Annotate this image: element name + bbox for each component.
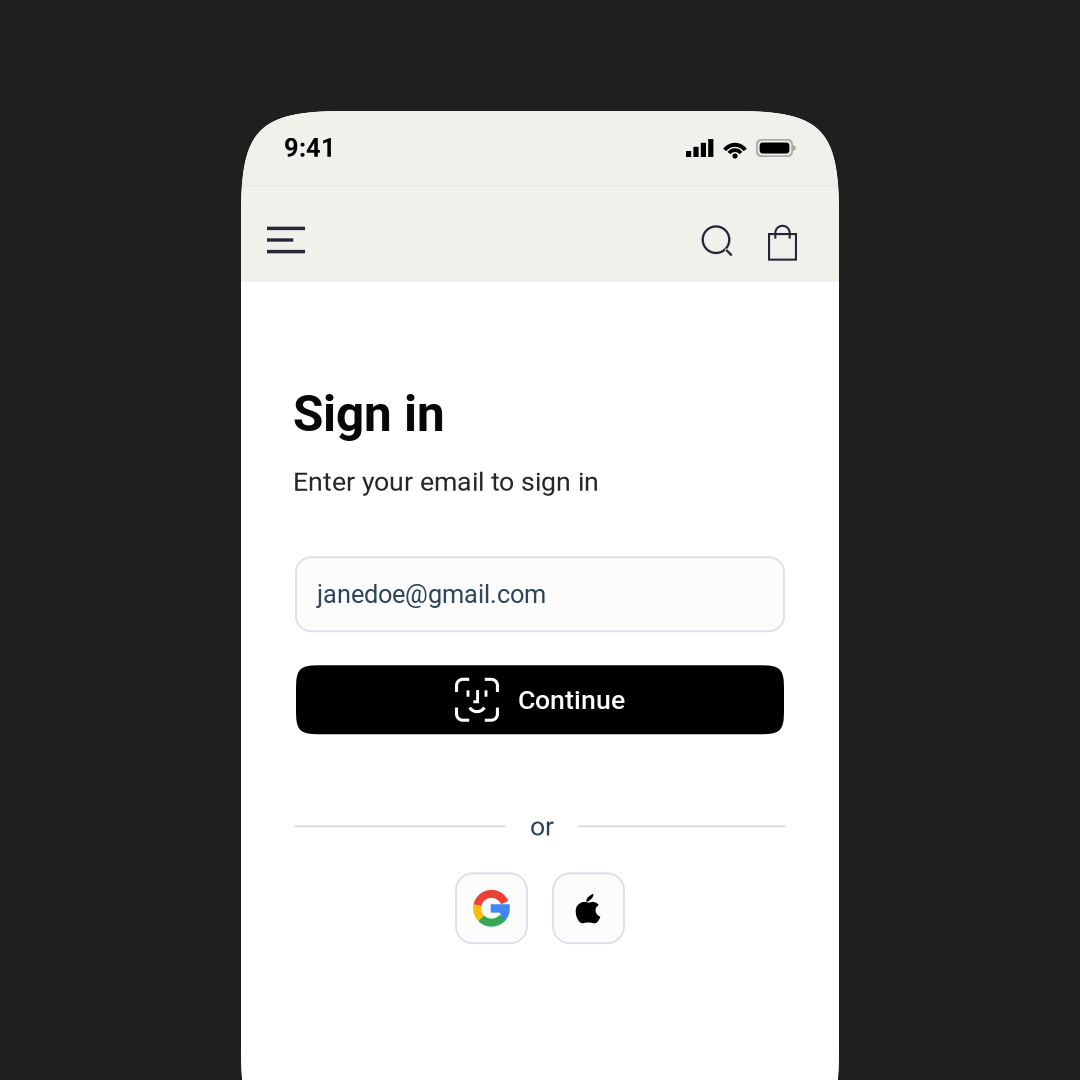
staticText: 9:41 xyxy=(284,133,336,163)
button[interactable]: Search xyxy=(705,204,758,274)
button[interactable]: Menu xyxy=(267,204,329,274)
staticText: Continue xyxy=(518,684,625,715)
button[interactable]: janedoe@gmail.com xyxy=(296,557,784,631)
button[interactable]: Sign in with Apple xyxy=(553,873,624,943)
button[interactable]: Continue xyxy=(296,665,784,734)
staticText: or xyxy=(530,811,554,842)
button[interactable]: Shopping bag xyxy=(758,204,807,274)
staticText: janedoe@gmail.com xyxy=(317,579,546,609)
button[interactable]: Sign in with Google xyxy=(456,873,527,943)
staticText: Enter your email to sign in xyxy=(293,466,599,497)
staticText: Sign in xyxy=(293,385,445,443)
